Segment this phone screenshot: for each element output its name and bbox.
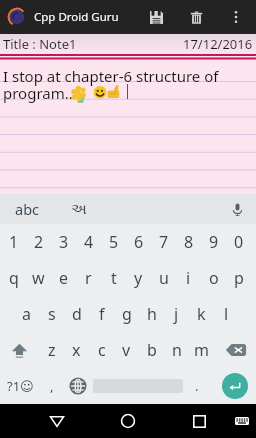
button[interactable]: Back	[40, 404, 74, 438]
button[interactable]: 7	[151, 224, 176, 260]
staticText: h	[147, 303, 157, 325]
staticText: u	[159, 267, 169, 289]
button[interactable]: Symbols	[0, 368, 40, 404]
button[interactable]: b	[139, 332, 164, 368]
button[interactable]: q	[1, 260, 26, 296]
button[interactable]: 6	[126, 224, 151, 260]
button[interactable]: Home	[111, 404, 145, 438]
button[interactable]: App icon	[7, 7, 27, 27]
button[interactable]: l	[214, 296, 239, 332]
button[interactable]: p	[226, 260, 251, 296]
staticText: n	[172, 339, 182, 361]
staticText: w	[32, 267, 45, 289]
button[interactable]: 9	[201, 224, 226, 260]
button[interactable]: Space	[92, 368, 184, 404]
staticText: p	[234, 267, 244, 289]
button[interactable]: 5	[101, 224, 126, 260]
button[interactable]: t	[101, 260, 126, 296]
button[interactable]: d	[64, 296, 89, 332]
button[interactable]: 8	[176, 224, 201, 260]
staticText: j	[174, 303, 179, 325]
staticText: a	[22, 303, 31, 325]
staticText: t	[111, 267, 117, 289]
button[interactable]: x	[64, 332, 89, 368]
button[interactable]: k	[189, 296, 214, 332]
button[interactable]: ,	[40, 368, 64, 404]
staticText: 6	[134, 231, 144, 253]
button[interactable]: w	[26, 260, 51, 296]
staticText: r	[85, 267, 92, 289]
button[interactable]: f	[89, 296, 114, 332]
staticText: abc	[15, 199, 40, 219]
button[interactable]: s	[39, 296, 64, 332]
staticText: 0	[234, 231, 244, 253]
staticText: z	[48, 339, 56, 361]
button[interactable]: i	[176, 260, 201, 296]
staticText: અ	[71, 202, 87, 217]
staticText: Cpp Droid Guru	[34, 9, 119, 25]
button[interactable]: 2	[26, 224, 51, 260]
staticText: c	[98, 339, 106, 361]
staticText: 3	[59, 231, 69, 253]
staticText: k	[197, 303, 206, 325]
staticText: q	[9, 267, 19, 289]
staticText: 9	[209, 231, 219, 253]
staticText: o	[209, 267, 219, 289]
button[interactable]: o	[201, 260, 226, 296]
button[interactable]: y	[126, 260, 151, 296]
button[interactable]: More options	[216, 0, 256, 34]
button[interactable]: r	[76, 260, 101, 296]
staticText: I stop at chapter-6 structure of	[3, 66, 219, 86]
button[interactable]: n	[164, 332, 189, 368]
staticText: l	[224, 303, 229, 325]
button[interactable]: c	[89, 332, 114, 368]
button[interactable]: Voice input	[221, 194, 253, 224]
staticText: x	[72, 339, 81, 361]
button[interactable]: Save	[136, 0, 176, 34]
staticText: .	[195, 377, 199, 395]
button[interactable]: અ	[54, 194, 104, 224]
staticText: g	[122, 303, 132, 325]
button[interactable]: m	[189, 332, 214, 368]
button[interactable]: 1	[1, 224, 26, 260]
button[interactable]: j	[164, 296, 189, 332]
button[interactable]: Recent apps	[182, 404, 216, 438]
button[interactable]: Backspace	[216, 332, 256, 368]
button[interactable]: Enter	[214, 368, 256, 404]
staticText: 4	[84, 231, 94, 253]
staticText: ,	[50, 377, 54, 395]
button[interactable]: 0	[226, 224, 251, 260]
button[interactable]: abc	[0, 194, 54, 224]
button[interactable]: Change language	[64, 368, 92, 404]
button[interactable]: Delete	[176, 0, 216, 34]
staticText: f	[99, 303, 105, 325]
staticText: 5	[109, 231, 119, 253]
button[interactable]: v	[114, 332, 139, 368]
staticText: 17/12/2016	[183, 35, 253, 53]
staticText: program..	[3, 83, 73, 103]
staticText: v	[122, 339, 131, 361]
staticText: 8	[184, 231, 194, 253]
button[interactable]: g	[114, 296, 139, 332]
button[interactable]: 4	[76, 224, 101, 260]
staticText: ?1☺	[7, 377, 34, 395]
staticText: e	[59, 267, 69, 289]
button[interactable]: 3	[51, 224, 76, 260]
staticText: 2	[34, 231, 44, 253]
staticText: 1	[9, 231, 19, 253]
staticText: b	[147, 339, 157, 361]
staticText: 7	[159, 231, 169, 253]
button[interactable]: z	[39, 332, 64, 368]
staticText: s	[48, 303, 56, 325]
button[interactable]: .	[184, 368, 210, 404]
button[interactable]: Hide keyboard	[227, 404, 256, 438]
staticText: m	[194, 339, 209, 361]
staticText: i	[186, 267, 191, 289]
staticText: Title : Note1	[3, 35, 77, 53]
button[interactable]: h	[139, 296, 164, 332]
button[interactable]: a	[14, 296, 39, 332]
button[interactable]: Shift	[0, 332, 39, 368]
staticText: y	[134, 267, 143, 289]
button[interactable]: e	[51, 260, 76, 296]
button[interactable]: u	[151, 260, 176, 296]
